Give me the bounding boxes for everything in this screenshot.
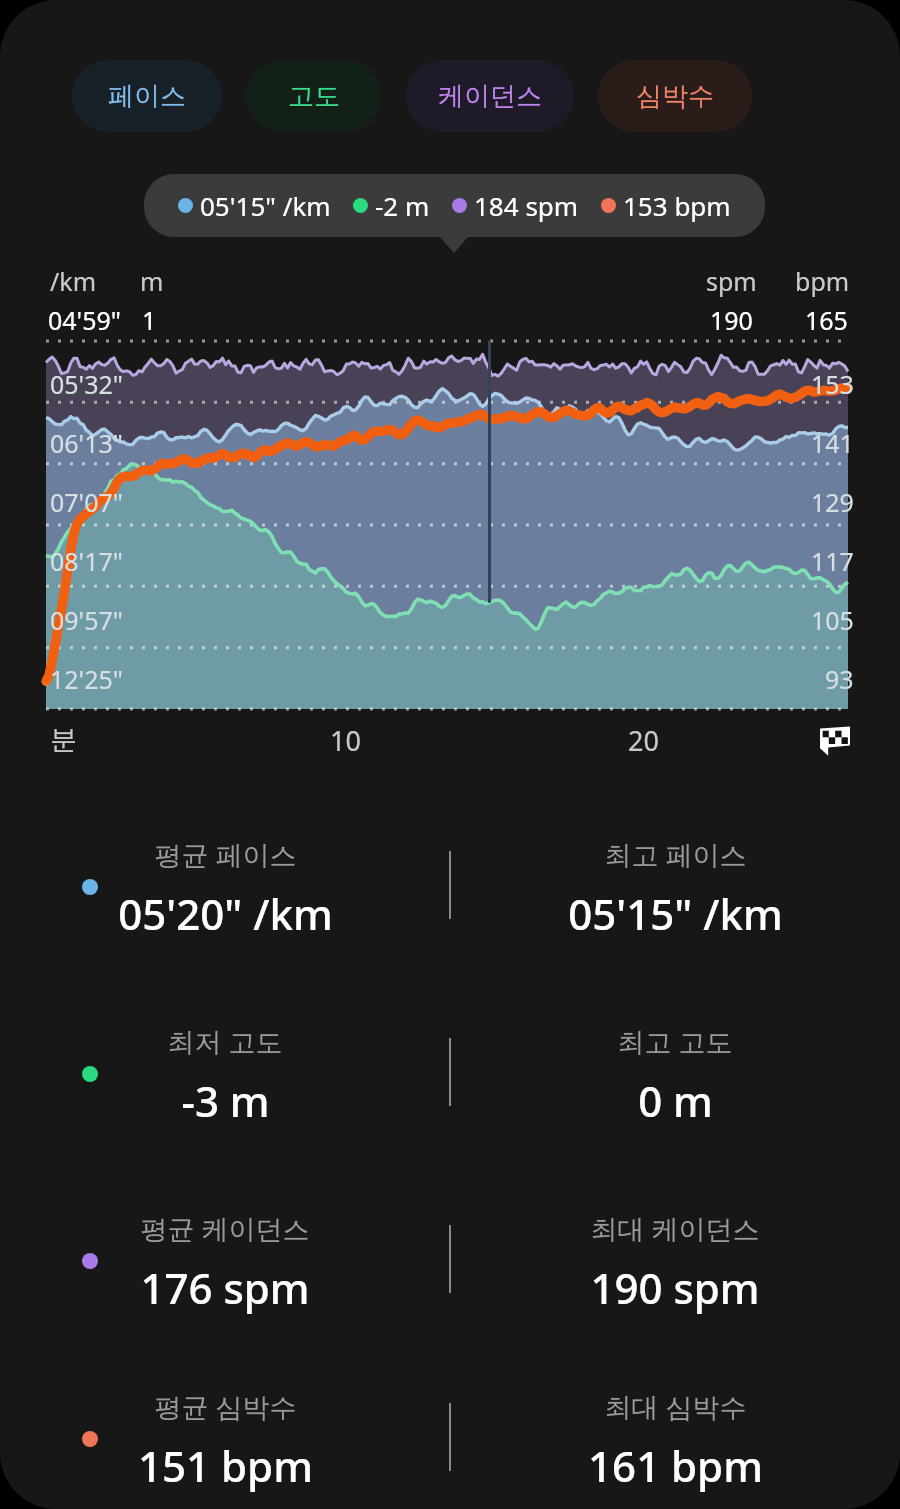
staticText: 190 xyxy=(710,303,753,337)
staticText: 평균 심박수 xyxy=(154,1388,297,1425)
button[interactable]: 평균 페이스 xyxy=(0,811,900,966)
staticText: 04'59" xyxy=(48,303,122,337)
staticText: 케이던스 xyxy=(438,80,542,113)
staticText: 평균 페이스 xyxy=(154,836,297,873)
staticText: 117 xyxy=(811,544,854,578)
staticText: 08'17" xyxy=(50,544,124,578)
staticText: 151 bpm xyxy=(138,1437,313,1494)
staticText: 07'07" xyxy=(50,485,124,519)
button[interactable]: 평균 심박수 xyxy=(0,1372,900,1509)
staticText: m xyxy=(140,264,164,298)
staticText: 165 xyxy=(805,303,848,337)
staticText: bpm xyxy=(795,264,850,298)
staticText: 평균 케이던스 xyxy=(140,1210,310,1247)
staticText: 1 xyxy=(142,303,157,337)
staticText: /km xyxy=(50,264,97,298)
staticText: 최대 심박수 xyxy=(604,1388,747,1425)
staticText: 190 spm xyxy=(590,1259,760,1316)
staticText: -3 m xyxy=(181,1072,270,1129)
staticText: 최고 페이스 xyxy=(604,836,747,873)
staticText: 176 spm xyxy=(140,1259,310,1316)
staticText: 최고 고도 xyxy=(617,1023,733,1060)
button[interactable]: 심박수 xyxy=(598,60,752,132)
staticText: 184 spm xyxy=(474,188,579,223)
other: Finish xyxy=(818,723,852,757)
staticText: 09'57" xyxy=(50,603,124,637)
staticText: 05'20" /km xyxy=(118,885,333,942)
staticText: 05'15" /km xyxy=(200,188,331,223)
staticText: spm xyxy=(706,264,757,298)
staticText: 141 xyxy=(811,426,854,460)
staticText: 0 m xyxy=(638,1072,713,1129)
staticText: 분 xyxy=(50,723,77,757)
button[interactable]: 케이던스 xyxy=(406,60,574,132)
staticText: 161 bpm xyxy=(588,1437,763,1494)
staticText: 05'32" xyxy=(50,367,124,401)
button[interactable]: 고도 xyxy=(246,60,382,132)
staticText: 고도 xyxy=(288,80,340,113)
staticText: 12'25" xyxy=(50,662,124,696)
staticText: 페이스 xyxy=(108,80,186,113)
staticText: 129 xyxy=(811,485,854,519)
staticText: 153 bpm xyxy=(623,188,731,223)
staticText: 최저 고도 xyxy=(167,1023,283,1060)
staticText: 153 xyxy=(811,367,854,401)
staticText: 심박수 xyxy=(636,80,714,113)
staticText: 105 xyxy=(811,603,854,637)
staticText: 06'13" xyxy=(50,426,124,460)
staticText: 05'15" /km xyxy=(568,885,783,942)
staticText: 10 xyxy=(330,722,361,759)
staticText: 최대 케이던스 xyxy=(590,1210,760,1247)
staticText: 93 xyxy=(825,662,854,696)
staticText: 20 xyxy=(628,722,659,759)
button[interactable]: 페이스 xyxy=(72,60,222,132)
button[interactable]: 평균 케이던스 xyxy=(0,1185,900,1340)
staticText: -2 m xyxy=(375,188,430,223)
button[interactable]: 최저 고도 xyxy=(0,998,900,1153)
